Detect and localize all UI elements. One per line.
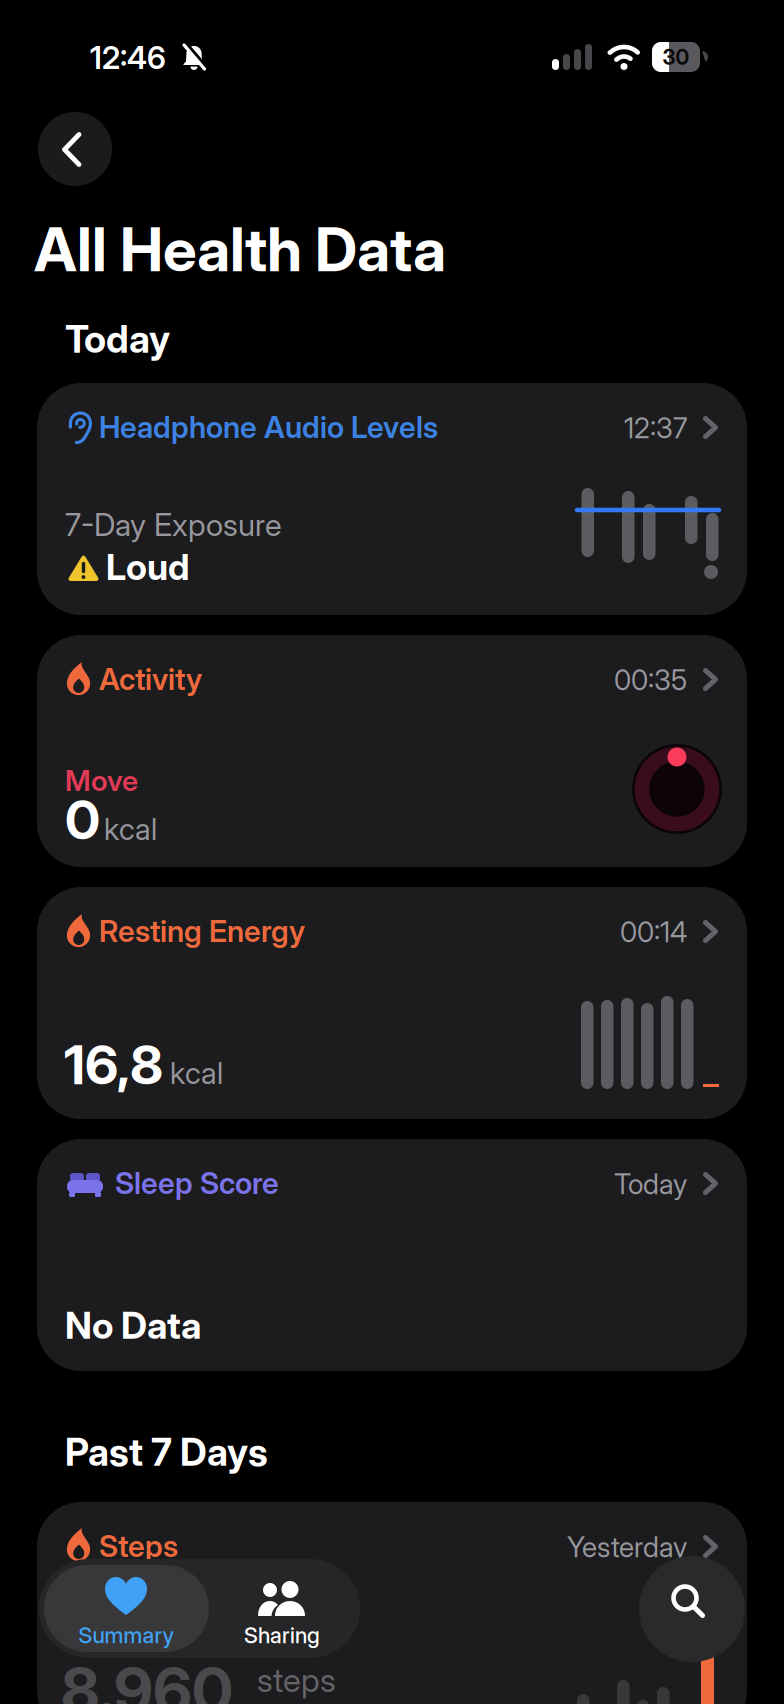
staticText: All Health Data [34,213,446,286]
staticText: 16,8 [64,1032,163,1097]
staticText: No Data [65,1303,201,1348]
staticText: Steps [99,1528,178,1564]
staticText: Today [65,316,170,362]
button[interactable]: Sleep Score [37,1139,747,1371]
button[interactable] [38,112,112,186]
staticText: Move [65,763,138,798]
staticText: 00:35 [614,663,687,697]
staticText: Yesterday [567,1530,687,1564]
staticText: Summary [78,1622,174,1649]
button[interactable] [639,1556,745,1662]
button[interactable]: Resting Energy [37,887,747,1119]
staticText: 12:46 [90,39,166,76]
staticText: kcal [170,1055,223,1091]
staticText: Headphone Audio Levels [99,409,438,445]
staticText: 30 [662,44,689,70]
staticText: Loud [106,545,190,589]
button[interactable]: Steps [37,1502,747,1704]
staticText: kcal [104,811,157,847]
button[interactable]: Sharing [209,1565,355,1652]
staticText: Today [614,1167,687,1201]
staticText: Sharing [244,1622,320,1649]
staticText: Sleep Score [115,1165,279,1201]
staticText: 0 [65,787,100,852]
staticText: 8.960 [61,1652,233,1704]
button[interactable]: Headphone Audio Levels [37,383,747,615]
staticText: 12:37 [624,411,687,445]
staticText: Past 7 Days [65,1429,268,1475]
staticText: steps [257,1660,336,1700]
staticText: 7-Day Exposure [65,506,282,543]
staticText: 00:14 [620,915,687,949]
button[interactable]: Summary [44,1565,209,1652]
button[interactable]: Activity [37,635,747,867]
staticText: Activity [99,661,202,697]
staticText: Resting Energy [99,913,305,949]
